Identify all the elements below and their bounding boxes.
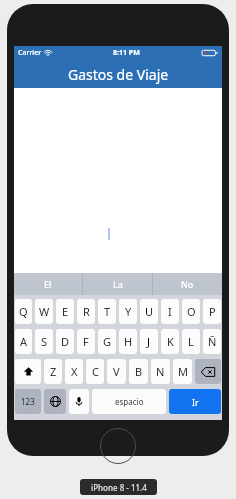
button[interactable]: R — [77, 299, 95, 324]
staticText: P — [209, 304, 216, 319]
button[interactable]: X — [65, 359, 83, 384]
button[interactable]: El — [14, 273, 82, 295]
button[interactable]: D — [56, 329, 74, 354]
button[interactable]: F — [77, 329, 95, 354]
button[interactable]: Z — [44, 359, 62, 384]
button[interactable]: H — [119, 329, 137, 354]
button[interactable]: I — [161, 299, 179, 324]
button[interactable]: No — [153, 273, 222, 295]
staticText: R — [83, 304, 90, 319]
button[interactable]: espacio — [92, 389, 166, 414]
staticText: H — [124, 334, 133, 349]
staticText: 123 — [21, 396, 35, 407]
button[interactable]: M — [173, 359, 192, 384]
button[interactable]: E — [56, 299, 74, 324]
button[interactable]: Q — [15, 299, 32, 324]
button[interactable]: P — [203, 299, 221, 324]
staticText: El — [44, 278, 52, 290]
button[interactable]: N — [151, 359, 170, 384]
staticText: D — [61, 334, 70, 349]
button[interactable]: La — [83, 273, 152, 295]
staticText: Q — [19, 304, 28, 319]
staticText: V — [113, 364, 120, 379]
button[interactable]: K — [161, 329, 179, 354]
staticText: La — [113, 278, 123, 290]
staticText: S — [41, 334, 48, 349]
staticText: J — [147, 334, 151, 349]
staticText: N — [156, 364, 165, 379]
button[interactable]: Ñ — [203, 329, 221, 354]
button[interactable]: A — [15, 329, 32, 354]
staticText: T — [104, 304, 111, 319]
button[interactable]: W — [35, 299, 53, 324]
staticText: No — [181, 278, 194, 290]
staticText: I — [168, 304, 172, 319]
button[interactable]: Backspace — [195, 359, 221, 384]
staticText: Ñ — [208, 334, 217, 349]
button[interactable]: S — [35, 329, 53, 354]
staticText: K — [167, 334, 174, 349]
staticText: A — [20, 334, 28, 349]
button[interactable]: Next keyboard — [44, 389, 66, 414]
staticText: F — [83, 334, 89, 349]
staticText: Z — [50, 364, 57, 379]
button[interactable]: Dictation — [69, 389, 89, 414]
staticText: Ir — [192, 396, 199, 408]
staticText: 8:11 PM — [113, 48, 140, 58]
staticText: M — [178, 364, 188, 379]
button[interactable]: B — [129, 359, 148, 384]
button[interactable]: T — [98, 299, 116, 324]
staticText: W — [39, 304, 50, 319]
staticText: Carrier — [18, 48, 42, 58]
button[interactable]: U — [140, 299, 158, 324]
button[interactable]: L — [182, 329, 200, 354]
button[interactable]: Shift — [15, 359, 41, 384]
staticText: C — [92, 364, 99, 379]
staticText: Gastos de Viaje — [68, 65, 169, 84]
staticText: B — [135, 364, 143, 379]
staticText: X — [71, 364, 78, 379]
button[interactable]: O — [182, 299, 200, 324]
button[interactable]: J — [140, 329, 158, 354]
staticText: O — [187, 304, 196, 319]
staticText: espacio — [115, 396, 144, 407]
staticText: G — [103, 334, 112, 349]
staticText: U — [145, 304, 154, 319]
staticText: Y — [125, 304, 132, 319]
button[interactable]: C — [86, 359, 104, 384]
staticText: iPhone 8 - 11.4 — [91, 482, 147, 493]
button[interactable]: V — [107, 359, 126, 384]
button[interactable]: G — [98, 329, 116, 354]
button[interactable]: Y — [119, 299, 137, 324]
button[interactable]: 123 — [15, 389, 41, 414]
staticText: E — [62, 304, 69, 319]
button[interactable]: Ir — [169, 389, 221, 414]
staticText: L — [188, 334, 194, 349]
